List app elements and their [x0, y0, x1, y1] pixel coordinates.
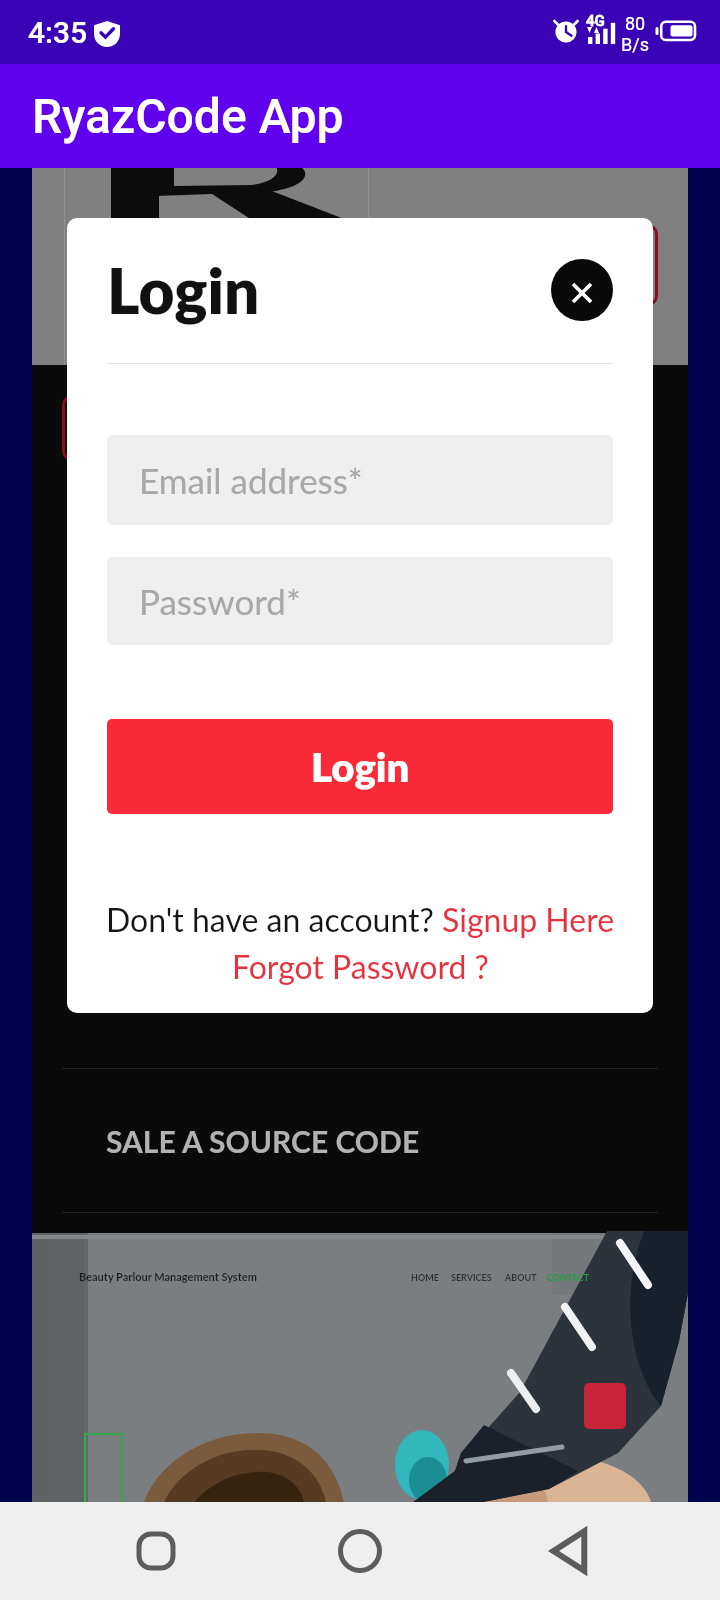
staticText: Login [311, 743, 410, 791]
staticText: ABOUT [505, 1272, 537, 1283]
button[interactable]: Login [107, 719, 613, 814]
button[interactable]: Email address* [107, 435, 613, 525]
staticText: RyazCode App [32, 88, 344, 144]
staticText: 4G [586, 12, 605, 30]
staticText: SALE A SOURCE CODE [106, 1123, 420, 1159]
staticText: CONTACT [547, 1272, 590, 1283]
staticText: Login [107, 253, 260, 327]
staticText: Beauty Parlour Management System [79, 1270, 257, 1283]
staticText: HOME [411, 1272, 439, 1283]
staticText: 80 [625, 13, 646, 34]
staticText: B/s [621, 34, 649, 55]
staticText: Forgot Password ? [232, 947, 489, 985]
button[interactable]: Close [551, 259, 613, 321]
button[interactable]: Home [311, 1502, 409, 1600]
staticText: SERVICES [451, 1272, 492, 1283]
staticText: 4:35 [28, 15, 88, 50]
button[interactable]: Forgot Password ? [67, 941, 653, 991]
staticText: Don't have an account? Signup Here [106, 900, 615, 938]
staticText: Email address* [139, 459, 363, 501]
button[interactable]: Back [516, 1502, 614, 1600]
button[interactable]: Password* [107, 557, 613, 645]
button[interactable]: Recent apps [107, 1502, 205, 1600]
staticText: Password* [139, 580, 301, 622]
button[interactable]: Don't have an account? Signup Here [67, 893, 653, 945]
